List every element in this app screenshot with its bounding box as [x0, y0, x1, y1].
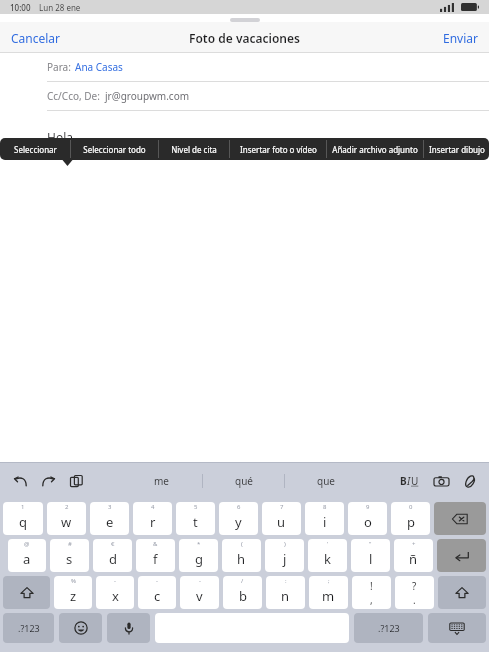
staticText: ' [327, 540, 329, 548]
button[interactable]: B [398, 474, 421, 488]
button[interactable]: ! [352, 576, 391, 609]
staticText: ? [412, 579, 417, 593]
button[interactable]: .?123 [354, 613, 423, 643]
button[interactable]: * [179, 539, 218, 572]
button[interactable]: Hide keyboard [428, 613, 486, 643]
button[interactable]: € [93, 539, 132, 572]
button[interactable]: % [54, 576, 92, 609]
button[interactable]: Backspace [434, 502, 486, 535]
staticText: t [193, 513, 198, 531]
button[interactable]: ' [308, 539, 347, 572]
button[interactable]: qué [203, 462, 284, 500]
button[interactable]: 1 [3, 502, 43, 535]
staticText: y [235, 513, 242, 531]
staticText: Cancelar [11, 30, 61, 46]
button[interactable]: Undo [10, 471, 30, 491]
button[interactable]: Return [437, 539, 486, 572]
button[interactable]: Shift [3, 576, 50, 609]
button[interactable]: Attach [459, 471, 479, 491]
staticText: Para: [47, 60, 71, 74]
button[interactable]: Cc/Cco, De: [0, 82, 489, 110]
button[interactable]: 0 [391, 502, 430, 535]
button[interactable]: / [223, 576, 262, 609]
staticText: a [23, 550, 31, 568]
button[interactable]: 7 [262, 502, 301, 535]
button[interactable]: .?123 [3, 613, 54, 643]
staticText: ; [328, 577, 330, 585]
button[interactable]: - [96, 576, 134, 609]
button[interactable]: 3 [90, 502, 129, 535]
staticText: ( [241, 540, 243, 548]
staticText: v [196, 587, 203, 605]
staticText: k [324, 550, 331, 568]
button[interactable]: 5 [176, 502, 215, 535]
button[interactable]: me [121, 462, 202, 500]
button[interactable]: Shift right [438, 576, 486, 609]
button[interactable]: ( [222, 539, 261, 572]
staticText: 4 [151, 503, 155, 511]
staticText: u [277, 513, 286, 531]
staticText: Seleccionar [14, 144, 57, 155]
staticText: % [71, 577, 76, 585]
button[interactable]: ? [395, 576, 434, 609]
staticText: Nivel de cita [171, 144, 217, 155]
button[interactable]: Para: [0, 53, 489, 81]
button[interactable]: @ [8, 539, 46, 572]
button[interactable]: Enviar [432, 22, 489, 53]
button[interactable]: : [266, 576, 305, 609]
staticText: - [114, 577, 116, 585]
button[interactable]: # [50, 539, 89, 572]
staticText: + [412, 540, 416, 548]
staticText: Hola [47, 129, 73, 145]
staticText: 2 [65, 503, 69, 511]
button[interactable]: Camera [431, 471, 451, 491]
button[interactable]: ; [309, 576, 348, 609]
staticText: Seleccionar todo [83, 144, 146, 155]
button[interactable]: Insertar dibujo [424, 138, 489, 160]
button[interactable]: Emoji [59, 613, 102, 643]
staticText: x [112, 587, 119, 605]
staticText: Insertar dibujo [429, 144, 485, 155]
button[interactable]: - [138, 576, 176, 609]
button[interactable]: Insertar foto o vídeo [230, 138, 326, 160]
staticText: f [153, 550, 158, 568]
staticText: .?123 [378, 622, 400, 634]
button[interactable]: + [394, 539, 433, 572]
staticText: c [154, 587, 161, 605]
button[interactable]: 6 [219, 502, 258, 535]
staticText: que [317, 474, 335, 488]
staticText: ! [370, 579, 373, 593]
staticText: B [400, 474, 407, 488]
button[interactable]: 8 [305, 502, 344, 535]
button[interactable]: Paste [66, 471, 86, 491]
button[interactable]: Cancelar [0, 22, 72, 53]
button[interactable]: Seleccionar todo [71, 138, 158, 160]
button[interactable]: ) [265, 539, 304, 572]
staticText: I [407, 474, 411, 488]
button[interactable]: & [136, 539, 175, 572]
button[interactable]: Añadir archivo adjunto [327, 138, 423, 160]
button[interactable]: Redo [38, 471, 58, 491]
staticText: jr@groupwm.com [105, 89, 190, 103]
button[interactable]: 2 [47, 502, 86, 535]
staticText: .?123 [18, 622, 40, 634]
staticText: g [195, 550, 203, 568]
staticText: € [111, 540, 115, 548]
button[interactable]: " [351, 539, 390, 572]
staticText: 8 [323, 503, 327, 511]
staticText: & [153, 540, 158, 548]
button[interactable]: que [285, 462, 366, 500]
button[interactable]: Dictate [107, 613, 150, 643]
button[interactable]: - [180, 576, 219, 609]
button[interactable]: Seleccionar [0, 138, 70, 160]
staticText: 3 [108, 503, 112, 511]
staticText: w [61, 513, 72, 531]
button[interactable]: 4 [133, 502, 172, 535]
staticText: 6 [237, 503, 241, 511]
staticText: 5 [194, 503, 198, 511]
button[interactable]: 9 [348, 502, 387, 535]
button[interactable]: Nivel de cita [159, 138, 229, 160]
staticText: h [237, 550, 246, 568]
staticText: m [322, 587, 335, 605]
